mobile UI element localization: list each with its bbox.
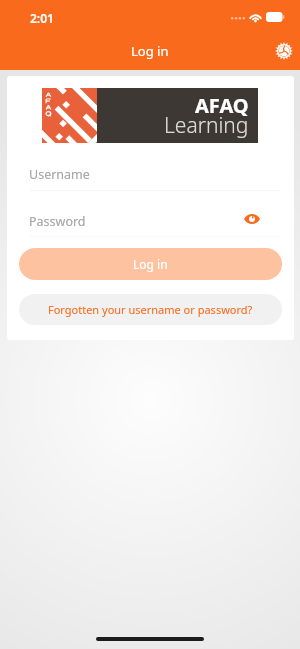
- button[interactable]: Forgotten your username or password?: [19, 294, 282, 325]
- staticText: Learning: [164, 111, 249, 140]
- staticText: Username: [29, 166, 90, 183]
- staticText: Forgotten your username or password?: [48, 302, 253, 317]
- staticText: Password: [29, 213, 86, 230]
- staticText: Log in: [133, 256, 168, 272]
- button[interactable]: Settings: [269, 36, 299, 66]
- button[interactable]: Show password: [240, 207, 264, 231]
- button[interactable]: Log in: [19, 248, 282, 280]
- staticText: AFAQ: [195, 92, 249, 119]
- staticText: Log in: [131, 42, 169, 60]
- staticText: 2:01: [30, 10, 54, 26]
